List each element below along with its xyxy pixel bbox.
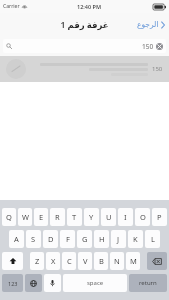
staticText: W xyxy=(22,212,29,222)
button[interactable]: J xyxy=(111,230,126,248)
staticText: space xyxy=(87,279,104,287)
staticText: B xyxy=(99,256,104,266)
button[interactable]: C xyxy=(62,252,76,270)
button[interactable]: Y xyxy=(84,208,99,226)
staticText: N xyxy=(114,256,120,266)
button[interactable]: R xyxy=(50,208,65,226)
staticText: T xyxy=(72,212,77,222)
staticText: J xyxy=(117,234,120,244)
staticText: 123 xyxy=(8,280,18,287)
button[interactable]: I xyxy=(118,208,133,226)
staticText: I xyxy=(124,212,127,222)
button[interactable]: Shift xyxy=(2,252,23,270)
staticText: غرفة رقم 1 xyxy=(60,19,109,31)
button[interactable]: T xyxy=(67,208,82,226)
staticText: Carrier xyxy=(3,3,20,10)
staticText: O xyxy=(140,212,146,222)
staticText: F xyxy=(66,234,70,244)
staticText: return xyxy=(139,279,157,287)
button[interactable]: Z xyxy=(30,252,44,270)
button[interactable]: P xyxy=(152,208,167,226)
button[interactable]: N xyxy=(110,252,124,270)
staticText: E xyxy=(39,212,44,222)
staticText: Q xyxy=(6,212,12,222)
staticText: G xyxy=(82,234,88,244)
button[interactable]: return xyxy=(129,274,167,292)
staticText: 12:40 PM xyxy=(77,3,102,10)
button[interactable]: O xyxy=(135,208,150,226)
button[interactable]: الرجوع xyxy=(133,17,169,32)
button[interactable]: Clear search xyxy=(156,43,163,50)
button[interactable]: M xyxy=(126,252,140,270)
button[interactable]: 150 xyxy=(3,39,166,53)
button[interactable]: space xyxy=(63,274,127,292)
button[interactable]: D xyxy=(43,230,58,248)
staticText: C xyxy=(67,256,72,266)
staticText: K xyxy=(133,234,138,244)
button[interactable]: 123 xyxy=(2,274,23,292)
staticText: P xyxy=(157,212,162,222)
staticText: D xyxy=(48,234,54,244)
staticText: A xyxy=(14,234,19,244)
staticText: 150 xyxy=(152,65,163,73)
button[interactable]: L xyxy=(145,230,160,248)
button[interactable]: Switch keyboard xyxy=(25,274,42,292)
button[interactable]: Q xyxy=(2,208,16,226)
button[interactable]: W xyxy=(18,208,32,226)
button[interactable]: Dictate xyxy=(44,274,61,292)
button[interactable]: 150 xyxy=(0,56,169,82)
button[interactable]: Backspace xyxy=(147,252,167,270)
staticText: M xyxy=(130,256,137,266)
button[interactable]: X xyxy=(46,252,60,270)
button[interactable]: G xyxy=(77,230,92,248)
button[interactable]: V xyxy=(78,252,92,270)
staticText: R xyxy=(55,212,60,222)
button[interactable]: B xyxy=(94,252,108,270)
staticText: الرجوع xyxy=(137,20,159,29)
button[interactable]: A xyxy=(9,230,24,248)
staticText: Z xyxy=(35,256,40,266)
staticText: S xyxy=(31,234,36,244)
staticText: U xyxy=(106,212,112,222)
staticText: L xyxy=(151,234,155,244)
button[interactable]: E xyxy=(34,208,48,226)
button[interactable]: H xyxy=(94,230,109,248)
staticText: X xyxy=(51,256,56,266)
staticText: Y xyxy=(89,212,94,222)
staticText: V xyxy=(83,256,88,266)
staticText: 150 xyxy=(142,42,154,51)
button[interactable]: S xyxy=(26,230,41,248)
button[interactable]: U xyxy=(101,208,116,226)
button[interactable]: K xyxy=(128,230,143,248)
button[interactable]: F xyxy=(60,230,75,248)
staticText: H xyxy=(99,234,105,244)
